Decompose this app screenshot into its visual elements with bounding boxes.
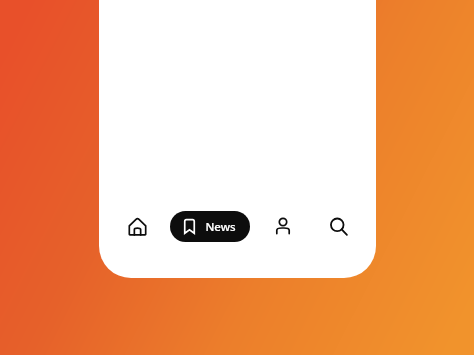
button[interactable]: Home [115,204,159,248]
button[interactable]: News [170,211,250,242]
staticText: News [205,219,236,235]
button[interactable]: Search [316,204,360,248]
button[interactable]: Profile [261,204,305,248]
